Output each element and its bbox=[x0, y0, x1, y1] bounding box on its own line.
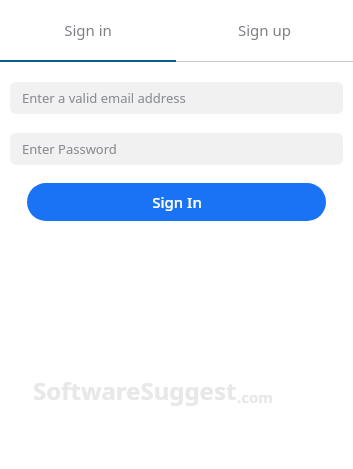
staticText: Sign in bbox=[64, 20, 112, 40]
staticText: Sign up bbox=[238, 20, 291, 40]
staticText: Enter a valid email address bbox=[22, 89, 186, 107]
staticText: Sign In bbox=[152, 192, 202, 212]
button[interactable]: Sign In bbox=[27, 183, 326, 221]
button[interactable]: Enter Password bbox=[10, 133, 343, 165]
button[interactable]: Sign in bbox=[0, 0, 176, 60]
staticText: SoftwareSuggest bbox=[33, 374, 237, 407]
staticText: Enter Password bbox=[22, 140, 117, 158]
staticText: .com bbox=[237, 387, 273, 407]
button[interactable]: Enter a valid email address bbox=[10, 82, 343, 114]
button[interactable]: Sign up bbox=[176, 0, 353, 60]
